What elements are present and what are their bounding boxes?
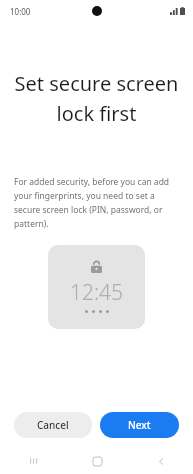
- staticText: Next: [128, 418, 151, 432]
- button[interactable]: Back: [129, 448, 193, 474]
- staticText: 10:00: [10, 6, 31, 17]
- staticText: Set secure screen lock first: [14, 70, 179, 127]
- button[interactable]: Recent apps: [0, 448, 65, 474]
- staticText: 12:45: [70, 278, 124, 307]
- button[interactable]: Next: [100, 412, 179, 438]
- staticText: For added security, before you can add y…: [14, 176, 181, 229]
- button[interactable]: Home: [65, 448, 129, 474]
- button[interactable]: Cancel: [14, 412, 92, 438]
- staticText: Cancel: [37, 418, 69, 432]
